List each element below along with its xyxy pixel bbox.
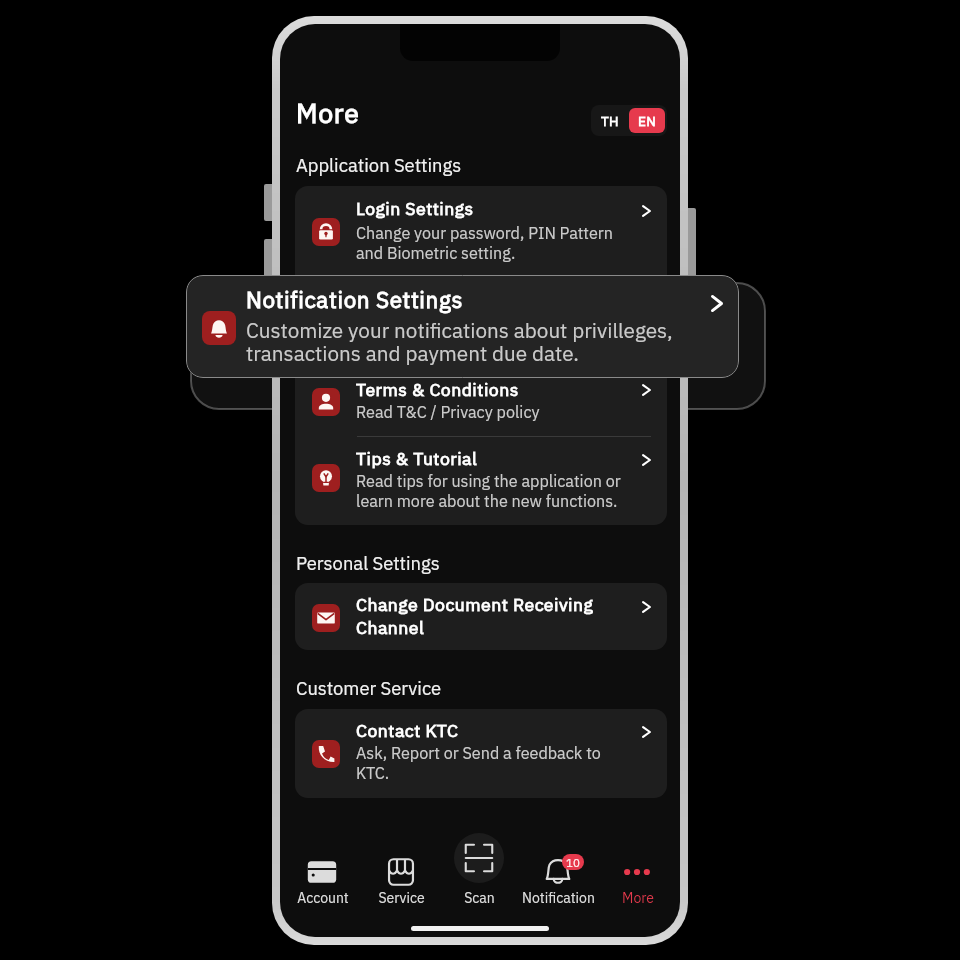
other: Notification — [544, 858, 572, 886]
staticText: Change your password, PIN Pattern and Bi… — [356, 222, 613, 264]
staticText: Notification Settings — [356, 289, 527, 312]
button[interactable]: Login Settings — [295, 186, 667, 278]
other: Open Notification Settings — [711, 295, 723, 312]
other: Account — [308, 858, 336, 886]
staticText: Ask, Report or Send a feedback to KTC. — [356, 742, 601, 784]
other: Terms & Conditions — [642, 384, 651, 396]
staticText: Change Document Receiving Channel — [356, 593, 594, 638]
staticText: 10 — [566, 855, 580, 870]
other: Contact KTC — [642, 726, 651, 738]
button[interactable]: Notification Settings — [186, 275, 739, 378]
other: Change Document Receiving Channel — [642, 601, 651, 613]
staticText: Personal Settings — [296, 551, 440, 575]
staticText: Application Settings — [296, 153, 462, 177]
button[interactable]: Change Document Receiving Channel — [295, 583, 667, 650]
staticText: Login Settings — [356, 197, 474, 220]
other: Login Settings — [642, 205, 651, 217]
staticText: More — [296, 96, 360, 130]
staticText: Read tips for using the application or l… — [356, 470, 621, 512]
staticText: Scan — [464, 889, 495, 907]
button[interactable]: Terms & Conditions — [295, 368, 667, 436]
staticText: TH — [601, 112, 620, 130]
staticText: EN — [638, 112, 657, 130]
button[interactable]: Notification Settings — [295, 278, 667, 368]
staticText: Customize your notifications about privi… — [246, 317, 673, 366]
staticText: Notification Settings — [246, 285, 463, 314]
staticText: Account — [297, 889, 349, 907]
other: More — [623, 858, 651, 886]
other: Service — [387, 858, 415, 886]
staticText: Service — [378, 889, 425, 907]
button[interactable]: Scan — [440, 834, 519, 924]
button[interactable]: Account — [283, 834, 362, 924]
other: Scan — [465, 844, 493, 872]
staticText: Tips & Tutorial — [356, 447, 478, 470]
button[interactable]: Contact KTC — [295, 709, 667, 798]
staticText: More — [622, 889, 654, 907]
other: Tips & Tutorial — [642, 454, 651, 466]
button[interactable]: More — [598, 834, 677, 924]
staticText: Contact KTC — [356, 719, 459, 742]
staticText: Customer Service — [296, 676, 442, 700]
button[interactable]: Service — [362, 834, 441, 924]
staticText: Read T&C / Privacy policy — [356, 401, 540, 422]
staticText: Terms & Conditions — [356, 378, 519, 401]
button[interactable]: TH — [591, 105, 667, 136]
button[interactable]: Tips & Tutorial — [295, 436, 667, 525]
button[interactable]: Notification — [519, 834, 598, 924]
staticText: Customize your notifications about privi… — [356, 314, 607, 356]
staticText: Notification — [522, 889, 595, 907]
